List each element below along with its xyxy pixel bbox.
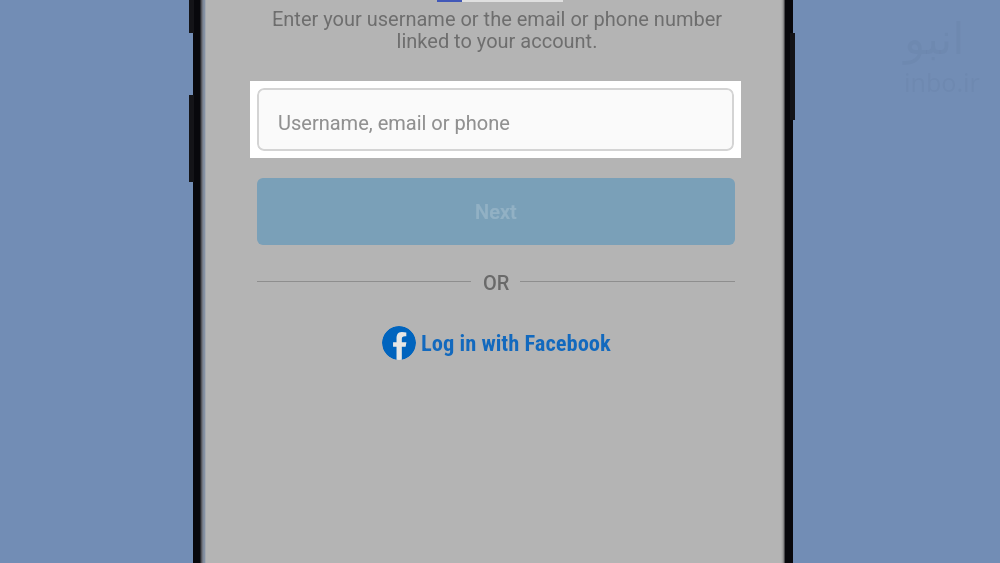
staticText: OR	[483, 271, 510, 294]
staticText: Next	[475, 200, 517, 223]
staticText: Log in with Facebook	[421, 330, 611, 356]
staticText: Enter your username or the email or phon…	[231, 7, 763, 53]
button[interactable]: Username, email or phone	[257, 88, 734, 151]
staticText: Username, email or phone	[278, 111, 510, 134]
button[interactable]: Log in with Facebook	[382, 325, 611, 361]
